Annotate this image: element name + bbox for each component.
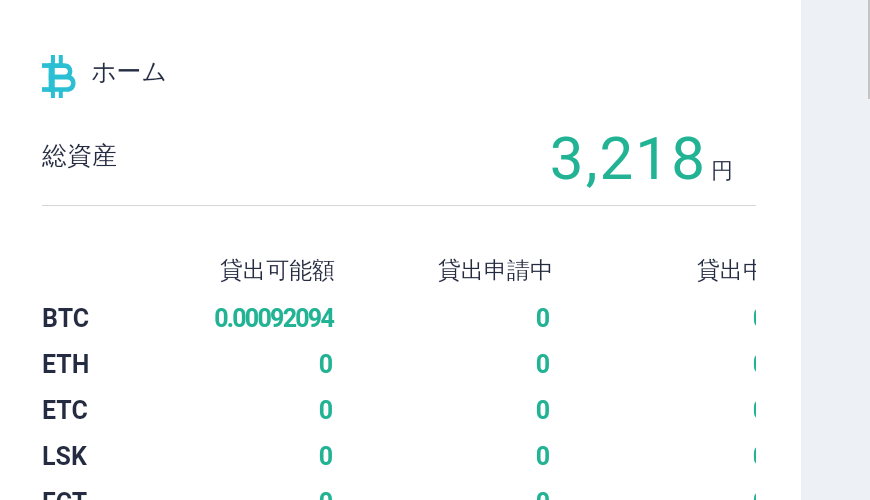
staticText: LSK	[42, 442, 87, 471]
staticText: 0	[330, 350, 550, 379]
other: Bitcoin	[42, 55, 77, 98]
button[interactable]: FCT	[0, 478, 756, 500]
staticText: 0	[547, 396, 756, 425]
button[interactable]: Bitcoin	[42, 55, 168, 98]
staticText: 0	[330, 396, 550, 425]
staticText: ETC	[42, 396, 88, 425]
staticText: 3,218	[0, 123, 707, 193]
staticText: 貸出可能額	[115, 256, 335, 285]
staticText: 0	[547, 304, 756, 333]
staticText: 0	[330, 488, 550, 500]
staticText: 0.00092094	[113, 304, 333, 333]
staticText: 0	[113, 442, 333, 471]
staticText: 0	[113, 488, 333, 500]
staticText: ホーム	[91, 56, 168, 87]
button[interactable]: ETH	[0, 340, 756, 386]
staticText: BTC	[42, 304, 90, 333]
button[interactable]: ETC	[0, 386, 756, 432]
staticText: 貸出中	[546, 256, 756, 285]
staticText: 円	[711, 157, 733, 185]
staticText: 0	[547, 488, 756, 500]
staticText: 0	[330, 442, 550, 471]
staticText: 0	[113, 350, 333, 379]
button[interactable]: BTC	[0, 294, 756, 340]
button[interactable]: LSK	[0, 432, 756, 478]
staticText: 0	[547, 350, 756, 379]
staticText: ETH	[42, 350, 90, 379]
staticText: 0	[547, 442, 756, 471]
staticText: 貸出申請中	[333, 256, 553, 285]
staticText: FCT	[42, 488, 88, 500]
staticText: 総資産	[42, 140, 117, 171]
staticText: 0	[330, 304, 550, 333]
staticText: 0	[113, 396, 333, 425]
